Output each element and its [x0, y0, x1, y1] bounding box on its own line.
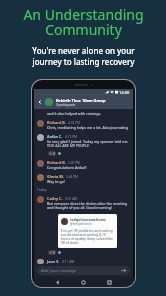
button[interactable]: Cathy C.: [37, 196, 130, 211]
staticText: 9:11 AM: [62, 260, 75, 264]
staticText: 9:01 AM: [65, 197, 78, 201]
button[interactable]: Gloria M.: [37, 174, 130, 184]
staticText: An Understanding Community: [23, 5, 144, 39]
button[interactable]: Home: [81, 280, 86, 285]
staticText: Chris, meditating helps me a lot. Also j…: [47, 125, 128, 130]
staticText: tedsjohnsonwelcome: [70, 217, 107, 222]
staticText: @tedsjohnlines: [70, 222, 92, 226]
staticText: Richard B.: [47, 160, 66, 165]
staticText: 4:12 PM: [65, 135, 77, 139]
staticText: Congratulations Anika!!: [47, 165, 87, 170]
button[interactable]: Back: [34, 95, 133, 109]
staticText: 5:44 PM: [66, 175, 78, 179]
staticText: Cathy C.: [47, 196, 63, 201]
staticText: Way to go!: [47, 179, 65, 184]
button[interactable]: 2: [48, 250, 56, 255]
staticText: Today: [37, 187, 47, 192]
staticText: 2: [53, 152, 55, 156]
button[interactable]: Recents: [107, 280, 112, 285]
staticText: Rebirth Thur. 10am Group: [56, 98, 106, 103]
staticText: Anika C.: [47, 134, 63, 139]
button[interactable]: 2: [48, 151, 56, 156]
staticText: 2: [53, 251, 55, 255]
button[interactable]: Jane S.: [37, 259, 130, 264]
button[interactable]: Anika C.: [37, 134, 130, 149]
staticText: You're never alone on your journey to la…: [32, 45, 135, 67]
staticText: Gloria M.: [47, 174, 64, 179]
button[interactable]: Back: [55, 280, 60, 285]
other: Send: [121, 268, 126, 273]
staticText: 4:02 PM: [68, 121, 80, 125]
staticText: Jane S.: [47, 259, 60, 264]
staticText: So very glad I joined. Today my sponsor …: [47, 139, 130, 149]
staticText: Add your message: [41, 268, 76, 273]
staticText: and it also helped with cravings.: [47, 111, 102, 116]
button[interactable]: Richard B.: [37, 120, 130, 130]
staticText: 5:40 PM: [68, 161, 80, 165]
other: Back: [37, 99, 43, 105]
staticText: But everyone does the dishes after the m…: [47, 201, 130, 211]
button[interactable]: Add your message: [37, 266, 130, 275]
staticText: Richard B.: [47, 120, 66, 125]
staticText: I've got 99 problems and cutting out alc…: [61, 228, 114, 245]
button[interactable]: Richard B.: [37, 160, 130, 170]
button[interactable]: tedsjohnsonwelcome: [58, 214, 117, 248]
staticText: 9 participants: [56, 103, 76, 107]
staticText: 12:00: [119, 90, 130, 95]
